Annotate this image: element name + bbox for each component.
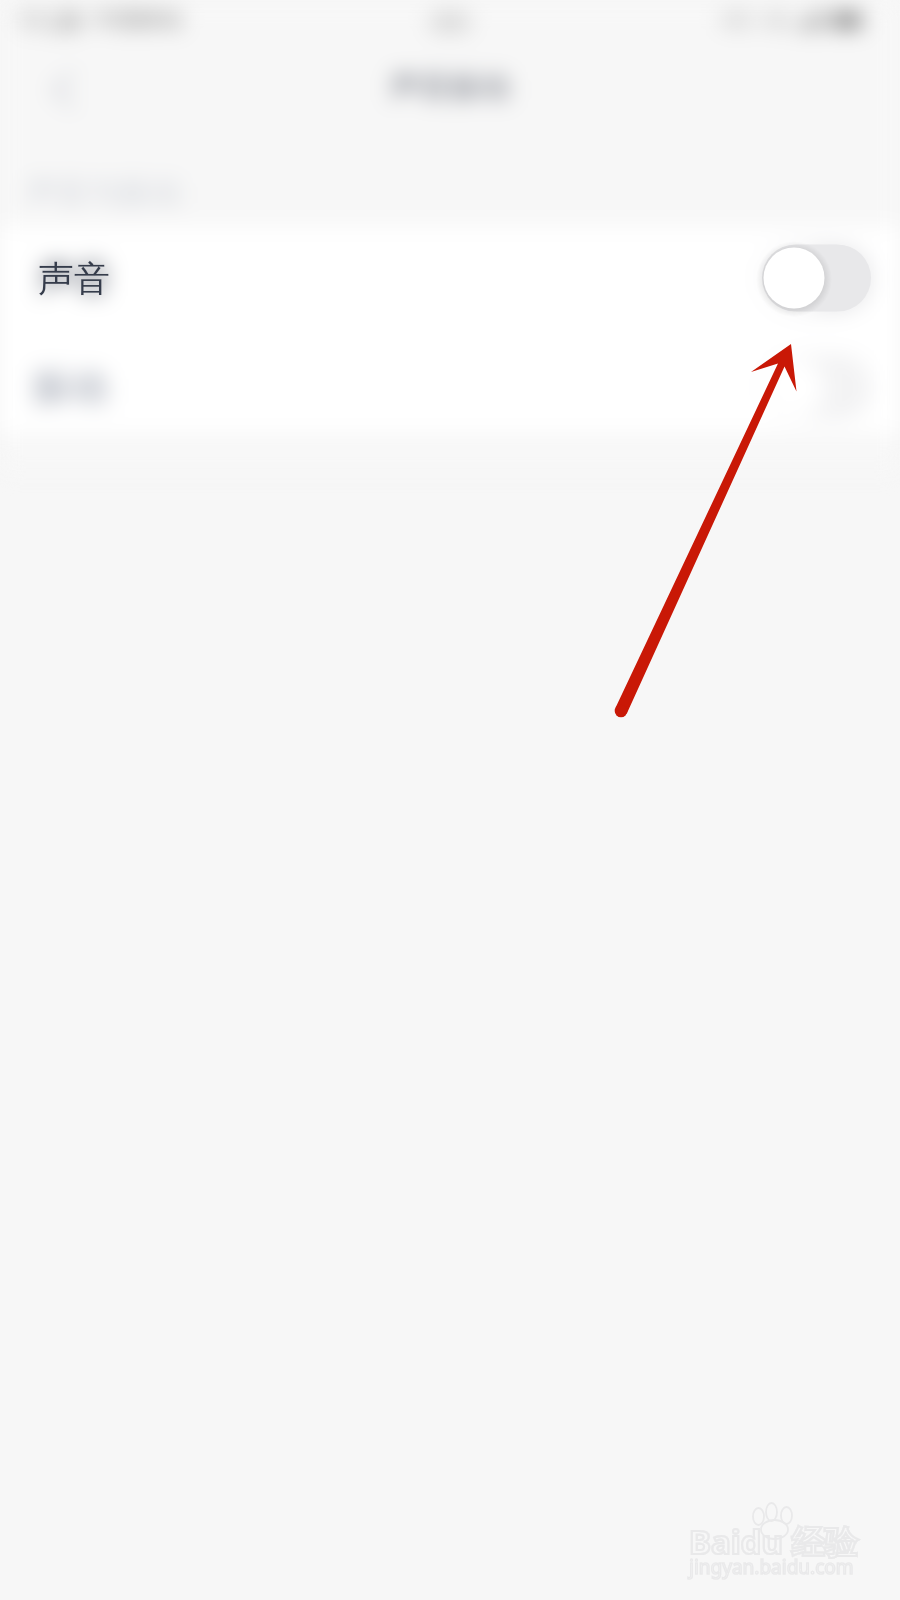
staticText: 振动 (32, 363, 108, 411)
staticText: 声音 (38, 255, 112, 302)
staticText: Baidu 经验 (689, 1519, 858, 1564)
staticText: 声音振动 (390, 68, 510, 106)
staticText: 11:28 (18, 3, 82, 37)
staticText: 中国移动 (94, 6, 182, 34)
staticText: 声音 (38, 256, 110, 301)
button[interactable]: 振动 (0, 330, 900, 434)
staticText: jingyan.baidu.com (689, 1554, 854, 1580)
button[interactable]: 声音 开关 (762, 242, 872, 314)
button[interactable]: 声音 (0, 226, 900, 330)
